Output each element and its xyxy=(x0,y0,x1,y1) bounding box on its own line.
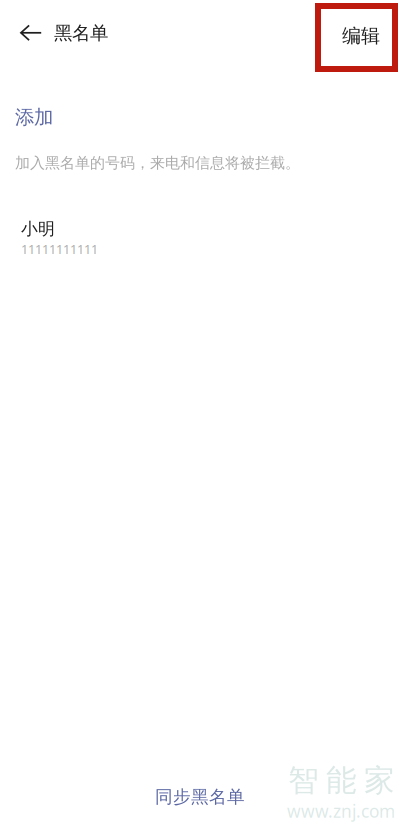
button[interactable]: 小明 xyxy=(0,172,112,264)
button[interactable]: Back xyxy=(0,8,54,58)
button[interactable]: 编辑 xyxy=(315,3,398,72)
staticText: 同步黑名单 xyxy=(155,786,245,808)
staticText: 添加 xyxy=(15,105,53,129)
staticText: 能 xyxy=(326,761,357,800)
staticText: 编辑 xyxy=(342,24,380,48)
staticText: 家 xyxy=(364,761,395,800)
button[interactable]: 同步黑名单 xyxy=(137,778,263,816)
staticText: www.znj.com xyxy=(287,799,395,823)
staticText: 智 xyxy=(288,761,319,800)
staticText: 黑名单 xyxy=(54,21,108,45)
staticText: 11111111111 xyxy=(21,241,98,258)
staticText: 加入黑名单的号码，来电和信息将被拦截。 xyxy=(15,153,300,172)
staticText: 小明 xyxy=(21,218,55,240)
button[interactable]: 添加 xyxy=(0,101,73,133)
